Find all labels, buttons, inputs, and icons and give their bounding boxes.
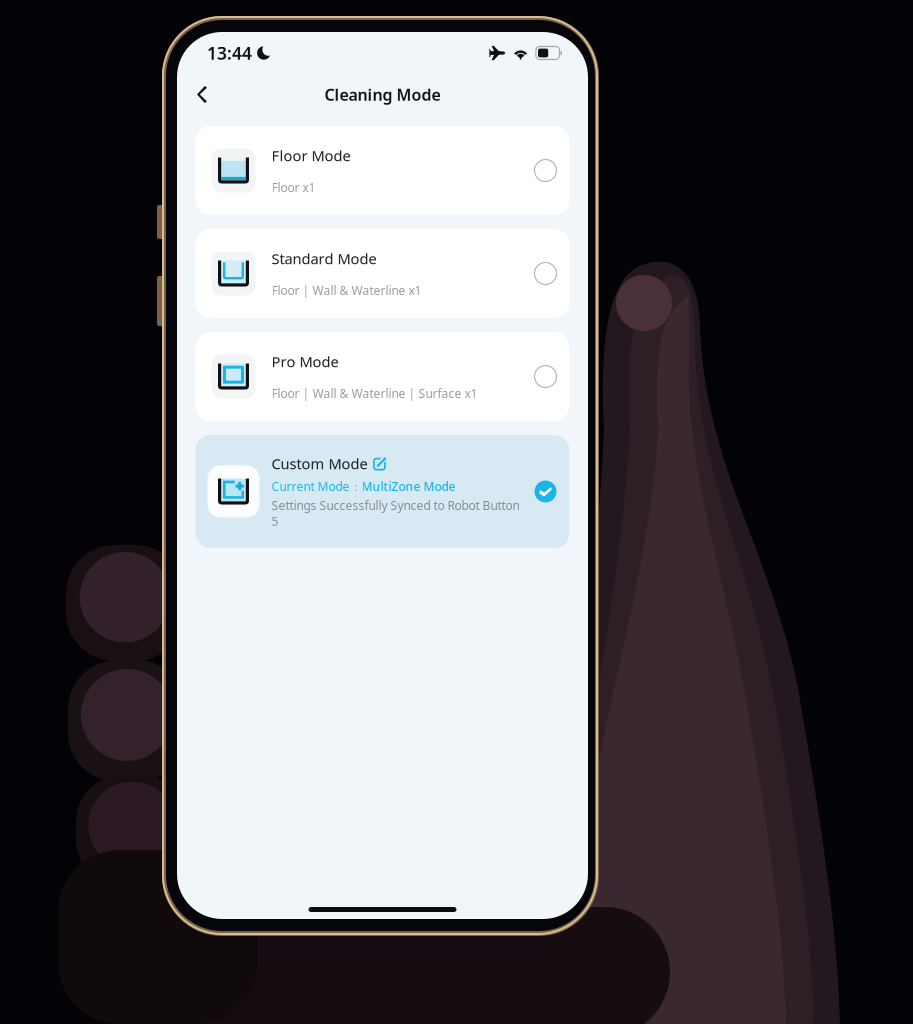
- staticText: Floor | Wall & Waterline x1: [271, 282, 421, 298]
- staticText: Cleaning Mode: [324, 84, 440, 105]
- staticText: Floor Mode: [271, 146, 350, 165]
- staticText: Floor x1: [271, 179, 315, 195]
- staticText: 13:44: [207, 41, 252, 64]
- button[interactable]: Standard Mode: [195, 229, 569, 318]
- staticText: Custom Mode: [271, 454, 367, 473]
- button[interactable]: Back: [177, 75, 223, 114]
- staticText: Standard Mode: [271, 249, 376, 268]
- staticText: Current Mode：: [271, 478, 361, 494]
- staticText: Floor | Wall & Waterline | Surface x1: [271, 385, 477, 401]
- button[interactable]: Custom Mode: [195, 435, 569, 548]
- button[interactable]: Floor Mode: [195, 126, 569, 215]
- staticText: MultiZone Mode: [361, 478, 455, 494]
- staticText: Settings Successfully Synced to Robot Bu…: [271, 497, 519, 529]
- button[interactable]: Pro Mode: [195, 332, 569, 421]
- staticText: Pro Mode: [271, 352, 338, 371]
